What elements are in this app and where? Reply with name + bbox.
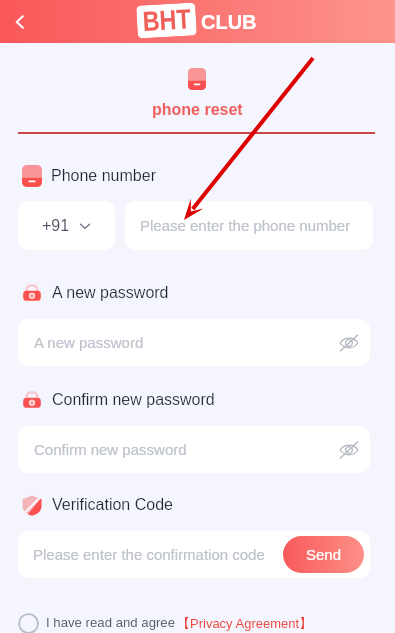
button[interactable]: A new password [18,319,370,366]
staticText: Phone number [51,167,156,185]
staticText: A new password [52,284,169,302]
staticText: Confirm new password [34,441,187,458]
button[interactable]: Show password [337,438,361,462]
staticText: phone reset [152,101,243,119]
button[interactable]: Send [283,536,364,573]
button[interactable]: Back [4,6,36,38]
staticText: BHT [142,3,192,36]
button[interactable]: Show password [337,331,361,355]
button[interactable]: Please enter the phone number [125,201,373,250]
staticText: A new password [34,334,144,351]
staticText: Verification Code [52,496,173,514]
button[interactable]: I have read and agree [18,613,313,633]
staticText: CLUB [201,11,257,33]
button[interactable]: +91 [18,201,115,250]
staticText: +91 [42,217,70,235]
staticText: Confirm new password [52,391,215,409]
staticText: Send [306,546,342,563]
staticText: I have read and agree [46,615,176,630]
staticText: Please enter the phone number [140,217,351,234]
button[interactable]: Confirm new password [18,426,370,473]
staticText: 【Privacy Agreement】 [177,615,313,631]
staticText: Please enter the confirmation code [33,546,265,563]
